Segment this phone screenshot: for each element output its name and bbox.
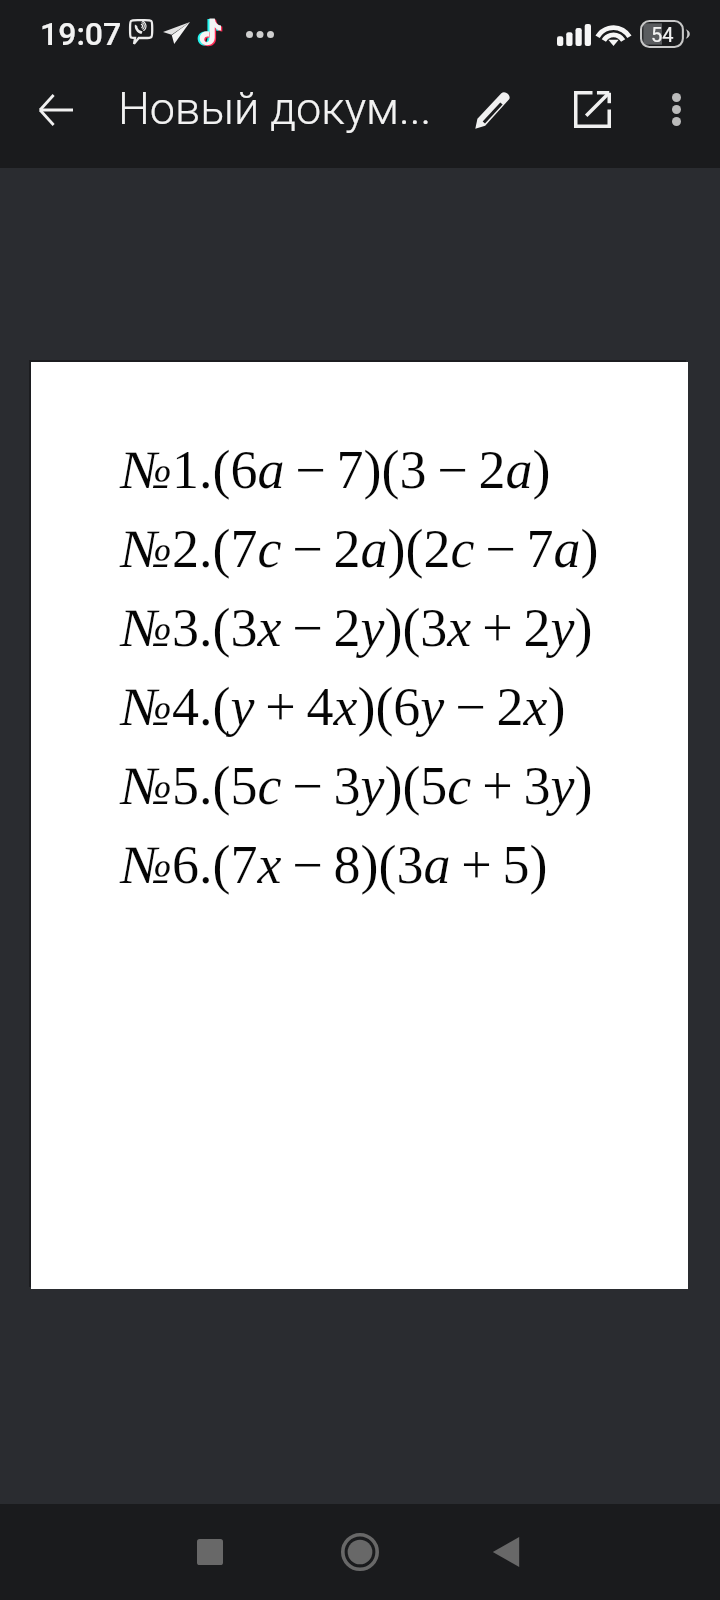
- staticText: №6.(7x − 8)(3a + 5): [121, 835, 548, 914]
- staticText: Новый докум...: [118, 82, 432, 135]
- button[interactable]: Back: [16, 62, 96, 157]
- staticText: №2.(7c − 2a)(2c − 7a): [121, 519, 599, 598]
- button[interactable]: Edit: [452, 62, 536, 157]
- button[interactable]: Open in another app: [550, 62, 634, 157]
- button[interactable]: More options: [640, 62, 712, 157]
- staticText: №3.(3x − 2y)(3x + 2y): [121, 598, 593, 677]
- staticText: №4.(y + 4x)(6y − 2x): [121, 677, 566, 756]
- button[interactable]: Document page 1: [31, 362, 688, 1289]
- staticText: №5.(5c − 3y)(5c + 3y): [121, 756, 593, 835]
- button[interactable]: Back: [462, 1504, 550, 1600]
- staticText: №1.(6a − 7)(3 − 2a): [121, 440, 551, 519]
- button[interactable]: Recent apps: [166, 1504, 254, 1600]
- staticText: 54: [651, 23, 674, 46]
- staticText: 19:07: [40, 15, 122, 53]
- button[interactable]: Home: [316, 1504, 404, 1600]
